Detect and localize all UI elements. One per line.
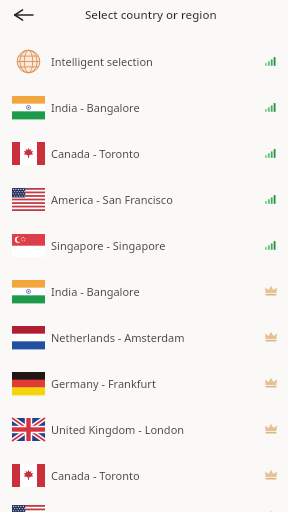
button[interactable]: Canada - Toronto bbox=[0, 130, 288, 176]
staticText: Germany - Frankfurt bbox=[51, 376, 156, 391]
button[interactable]: Canada - Toronto bbox=[0, 452, 288, 498]
button[interactable]: Netherlands - Amsterdam bbox=[0, 314, 288, 360]
staticText: Singapore - Singapore bbox=[51, 238, 166, 253]
button[interactable]: India - Bangalore bbox=[0, 268, 288, 314]
staticText: Select country or region bbox=[85, 7, 217, 23]
staticText: India - Bangalore bbox=[51, 284, 140, 299]
staticText: Canada - Toronto bbox=[51, 146, 140, 161]
button[interactable]: India - Bangalore bbox=[0, 84, 288, 130]
button[interactable]: Singapore - Singapore bbox=[0, 222, 288, 268]
button[interactable]: America - San Francisco bbox=[0, 176, 288, 222]
staticText: Netherlands - Amsterdam bbox=[51, 330, 185, 345]
button[interactable]: United Kingdom - London bbox=[0, 406, 288, 452]
button[interactable]: Germany - Frankfurt bbox=[0, 360, 288, 406]
staticText: Canada - Toronto bbox=[51, 468, 140, 483]
staticText: India - Bangalore bbox=[51, 100, 140, 115]
button[interactable] bbox=[0, 0, 40, 30]
staticText: United Kingdom - London bbox=[51, 422, 185, 437]
button[interactable]: America - San Francisco bbox=[0, 493, 288, 512]
button[interactable]: Intelligent selection bbox=[0, 38, 288, 84]
staticText: America - San Francisco bbox=[51, 192, 173, 207]
staticText: Intelligent selection bbox=[51, 54, 153, 69]
